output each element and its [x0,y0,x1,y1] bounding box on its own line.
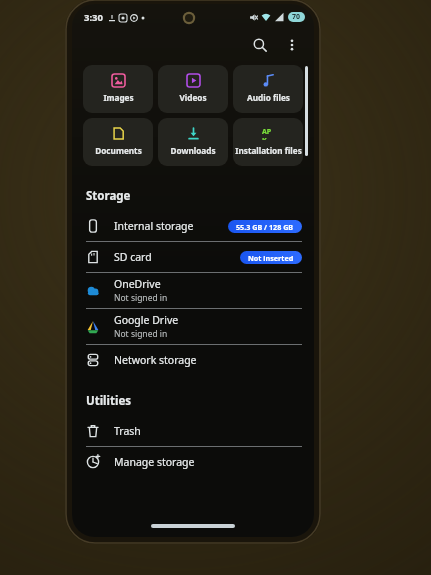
staticText: Internal storage [114,219,194,233]
staticText: Documents [95,145,142,156]
staticText: Downloads [170,145,216,156]
button[interactable]: OneDrive [72,273,314,309]
staticText: Google Drive [114,313,179,327]
button[interactable]: SD card [72,242,314,273]
staticText: Not signed in [114,292,168,304]
staticText: Videos [179,92,207,103]
button[interactable]: Internal storage [72,211,314,242]
button[interactable]: More options [278,31,306,59]
button[interactable]: Videos [158,65,228,113]
button[interactable]: Google Drive [72,309,314,345]
staticText: Not inserted [248,253,294,263]
staticText: Images [103,92,134,103]
staticText: 55.3 GB / 128 GB [236,222,294,232]
staticText: Storage [86,188,131,204]
staticText: 70 [292,12,301,22]
button[interactable]: Documents [83,118,153,166]
staticText: Audio files [247,92,290,103]
button[interactable]: Images [83,65,153,113]
button[interactable]: Downloads [158,118,228,166]
staticText: 3:30 [84,11,103,24]
staticText: Utilities [86,393,132,409]
staticText: Installation files [235,145,302,156]
staticText: SD card [114,250,152,264]
staticText: Network storage [114,353,197,367]
staticText: APK [262,127,275,140]
staticText: OneDrive [114,277,161,291]
button[interactable]: Trash [72,416,314,447]
staticText: Trash [114,424,141,438]
staticText: Manage storage [114,455,195,469]
button[interactable]: Manage storage [72,447,314,477]
button[interactable]: Audio files [233,65,303,113]
button[interactable]: APK [233,118,303,166]
button[interactable]: Network storage [72,345,314,375]
button[interactable]: Search [246,31,274,59]
staticText: Not signed in [114,328,168,340]
